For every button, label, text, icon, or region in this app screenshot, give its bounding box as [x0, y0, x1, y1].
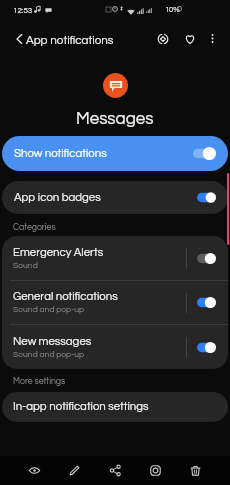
staticText: Sound and pop-up	[13, 305, 85, 314]
button[interactable]: Emergency Alerts	[2, 236, 228, 280]
button[interactable]: New messages	[2, 325, 228, 369]
button[interactable]: Show notifications	[2, 136, 228, 171]
staticText: In-app notification settings	[13, 401, 149, 413]
staticText: Messages	[76, 110, 154, 128]
staticText: App icon badges	[14, 192, 101, 204]
staticText: Sound and pop-up	[13, 350, 85, 359]
button[interactable]: Sound mode	[152, 28, 173, 49]
staticText: More settings	[13, 377, 66, 386]
staticText: 10%	[165, 6, 180, 14]
button[interactable]: App icon badges	[2, 181, 228, 214]
button[interactable]: More options	[202, 28, 222, 48]
button[interactable]: Instagram	[141, 458, 169, 483]
staticText: General notifications	[13, 291, 118, 303]
staticText: Sound	[13, 261, 38, 270]
button[interactable]: Preview	[20, 458, 48, 483]
button[interactable]: General notifications	[2, 281, 228, 324]
staticText: Categories	[13, 223, 56, 232]
button[interactable]: Favorite	[179, 28, 200, 49]
button[interactable]: Navigate up	[8, 28, 30, 50]
staticText: Emergency Alerts	[13, 247, 104, 259]
staticText: App notifications	[26, 34, 114, 46]
button[interactable]: In-app notification settings	[2, 392, 228, 422]
staticText: Show notifications	[14, 148, 107, 160]
button[interactable]: Delete	[181, 458, 209, 483]
staticText: 12:53	[13, 6, 33, 14]
staticText: New messages	[13, 336, 92, 348]
button[interactable]: Share	[101, 458, 129, 483]
button[interactable]: Edit	[60, 458, 88, 483]
